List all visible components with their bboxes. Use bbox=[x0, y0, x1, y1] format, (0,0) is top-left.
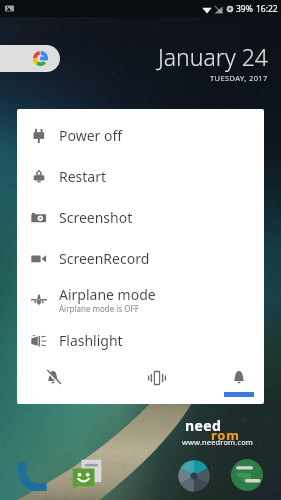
staticText: need bbox=[185, 416, 222, 435]
button[interactable]: Screenshot bbox=[17, 197, 264, 238]
staticText: ScreenRecord bbox=[59, 249, 150, 268]
staticText: Power off bbox=[59, 126, 123, 145]
button[interactable]: WhatsApp bbox=[230, 458, 264, 492]
button[interactable]: Restart bbox=[17, 156, 264, 197]
staticText: Flashlight bbox=[59, 331, 123, 350]
button[interactable]: Silent bbox=[23, 361, 83, 404]
button[interactable]: Airplane mode bbox=[17, 279, 264, 320]
staticText: www.needrom.com bbox=[182, 437, 254, 447]
staticText: Airplane mode is OFF bbox=[59, 303, 139, 314]
button[interactable]: Google search bbox=[0, 45, 60, 72]
staticText: Airplane mode bbox=[59, 285, 156, 304]
staticText: Screenshot bbox=[59, 208, 133, 227]
button[interactable]: Flashlight bbox=[17, 320, 264, 361]
staticText: 16:22 bbox=[256, 3, 278, 15]
staticText: rom bbox=[211, 426, 240, 444]
button[interactable]: Camera bbox=[177, 459, 211, 493]
button[interactable]: Vibrate bbox=[127, 361, 187, 404]
staticText: Restart bbox=[59, 167, 107, 186]
button[interactable]: Phone bbox=[16, 459, 50, 493]
staticText: TUESDAY, 2017 bbox=[210, 73, 268, 83]
button[interactable]: Messages bbox=[70, 457, 104, 491]
button[interactable]: ScreenRecord bbox=[17, 238, 264, 279]
button[interactable]: Ring bbox=[213, 361, 264, 404]
staticText: 39% bbox=[236, 3, 253, 15]
staticText: January 24 bbox=[158, 41, 268, 72]
button[interactable]: Power off bbox=[17, 115, 264, 156]
